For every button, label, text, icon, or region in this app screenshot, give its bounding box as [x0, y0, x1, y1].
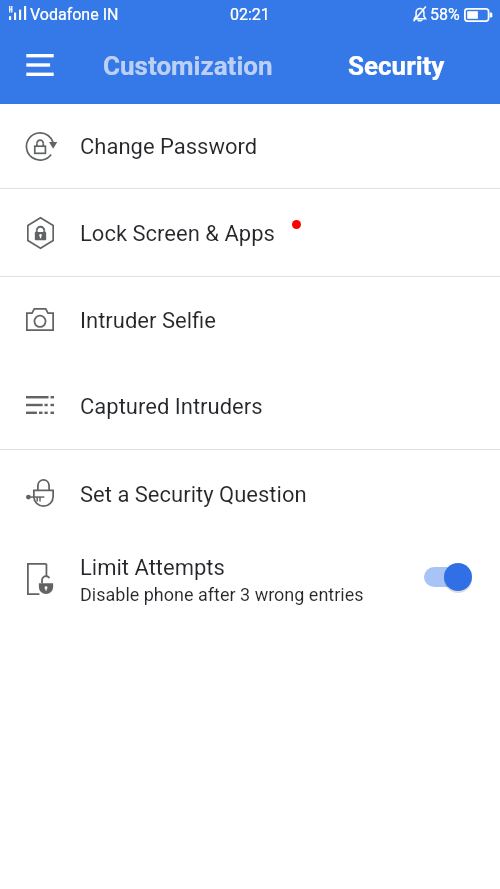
button[interactable]: Security: [336, 28, 456, 104]
staticText: Change Password: [80, 134, 258, 160]
button[interactable]: Limit Attempts: [0, 537, 500, 624]
staticText: Disable phone after 3 wrong entries: [80, 584, 364, 605]
staticText: Lock Screen & Apps: [80, 221, 275, 247]
button[interactable]: Intruder Selfie: [0, 277, 500, 363]
staticText: Security: [348, 51, 445, 81]
button[interactable]: Change Password: [0, 104, 500, 188]
button[interactable]: Set a Security Question: [0, 450, 500, 537]
staticText: 58%: [430, 5, 460, 24]
button[interactable]: Customization: [92, 28, 284, 104]
staticText: Limit Attempts: [80, 555, 225, 581]
staticText: Set a Security Question: [80, 482, 307, 508]
button[interactable]: Limit attempts toggle: [424, 559, 472, 595]
button[interactable]: Captured Intruders: [0, 363, 500, 449]
staticText: Vodafone IN: [30, 5, 119, 24]
button[interactable]: Lock Screen & Apps: [0, 189, 500, 276]
staticText: 02:21: [230, 5, 270, 24]
button[interactable]: Open navigation menu: [15, 42, 63, 90]
staticText: Intruder Selfie: [80, 308, 216, 334]
staticText: Captured Intruders: [80, 394, 263, 420]
staticText: Customization: [103, 51, 273, 81]
